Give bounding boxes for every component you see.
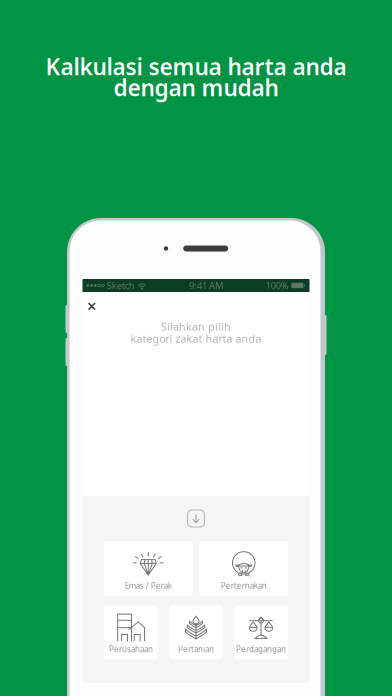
staticText: Silahkan pilih — [161, 319, 231, 334]
staticText: Perternakan — [221, 580, 267, 591]
staticText: Perusahaan — [109, 644, 153, 654]
staticText: Kalkulasi semua harta anda — [45, 51, 346, 81]
staticText: kategori zakat harta anda — [130, 331, 261, 346]
staticText: Emas / Perak — [125, 580, 172, 591]
staticText: 100% — [266, 279, 289, 292]
button[interactable]: Close — [82, 292, 105, 318]
button[interactable]: Perdagangan — [234, 605, 288, 659]
button[interactable]: Perternakan — [199, 541, 288, 596]
staticText: Pertanian — [178, 644, 214, 654]
staticText: dengan mudah — [113, 72, 278, 102]
staticText: Perdagangan — [236, 644, 286, 654]
button[interactable]: Collapse — [187, 510, 204, 527]
button[interactable]: Perusahaan — [104, 605, 158, 659]
button[interactable]: Emas / Perak — [104, 541, 192, 596]
button[interactable]: Pertanian — [169, 605, 223, 659]
staticText: 9:41 AM — [189, 279, 223, 292]
staticText: Sketch — [107, 279, 135, 292]
